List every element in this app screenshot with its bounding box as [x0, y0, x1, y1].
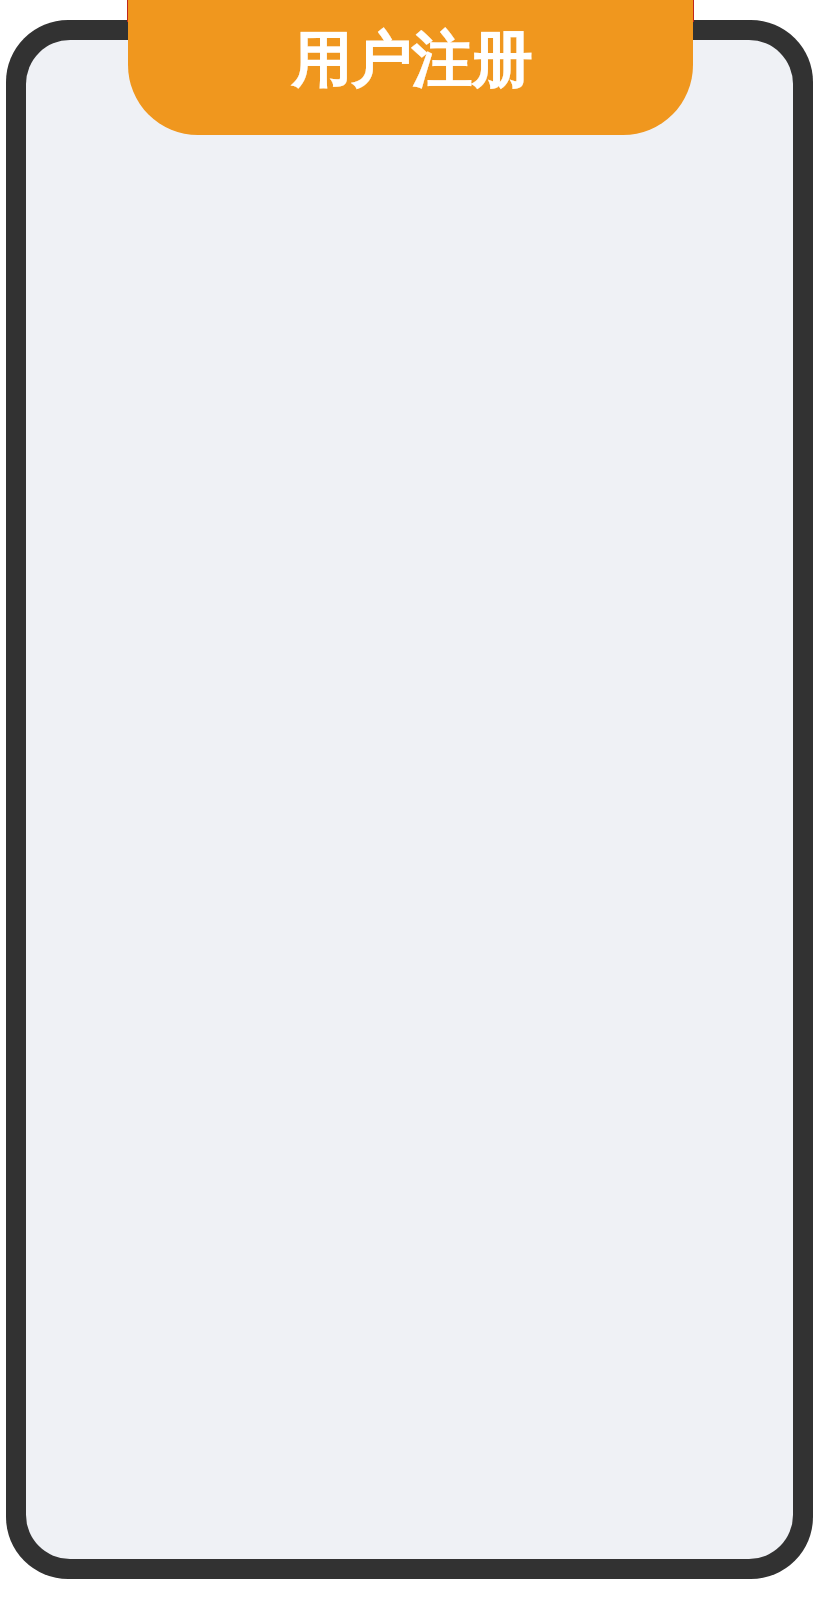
button[interactable]: 用户注册	[128, 0, 693, 135]
staticText: 用户注册	[291, 23, 531, 99]
